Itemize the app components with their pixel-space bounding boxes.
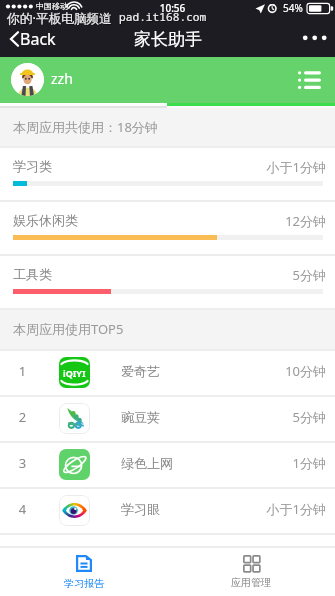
button[interactable]: 工具类 (0, 256, 335, 308)
staticText: 12分钟 (0, 212, 326, 230)
button[interactable]: 应用管理 (167, 548, 335, 596)
button[interactable]: zzh (0, 57, 335, 103)
staticText: 你的·平板电脑频道 (8, 10, 113, 27)
staticText: 你的·平板电脑频道 (7, 9, 112, 26)
staticText: 豌豆荚 (121, 409, 160, 425)
staticText: pad.it168.com (118, 8, 206, 23)
button[interactable]: Menu (287, 57, 335, 103)
staticText: 应用管理 (231, 576, 271, 589)
button[interactable]: More options (295, 20, 335, 57)
staticText: zzh (51, 69, 73, 88)
staticText: 1分钟 (0, 454, 326, 472)
staticText: 学习报告 (64, 577, 104, 590)
staticText: pad.it168.com (119, 9, 207, 24)
staticText: 你的·平板电脑频道 (6, 8, 111, 25)
staticText: 本周应用使用TOP5 (13, 320, 124, 338)
staticText: 10:56 (5, 1, 335, 15)
button[interactable]: 3 (0, 443, 335, 487)
button[interactable]: 学习报告 (0, 548, 167, 596)
staticText: 4 (0, 500, 45, 518)
staticText: 家长助手 (134, 29, 202, 50)
staticText: iQIYI (63, 367, 86, 379)
staticText: 小于1分钟 (0, 500, 326, 518)
staticText: 1 (0, 362, 45, 380)
staticText: 10分钟 (0, 362, 326, 380)
staticText: 小于1分钟 (0, 158, 326, 176)
staticText: 工具类 (13, 266, 52, 282)
staticText: 爱奇艺 (121, 363, 160, 379)
staticText: 3 (0, 454, 45, 472)
staticText: 2 (0, 408, 45, 426)
staticText: 学习类 (13, 158, 52, 174)
staticText: 5分钟 (0, 408, 326, 426)
staticText: Back (20, 28, 56, 50)
button[interactable]: Back (0, 20, 64, 57)
staticText: 5分钟 (0, 266, 326, 284)
staticText: 学习眼 (121, 501, 160, 517)
button[interactable]: 娱乐休闲类 (0, 202, 335, 254)
staticText: 绿色上网 (121, 455, 173, 471)
staticText: 54% (283, 1, 303, 15)
staticText: 本周应用共使用：18分钟 (13, 118, 158, 136)
staticText: pad.it168.com (120, 10, 208, 25)
staticText: 娱乐休闲类 (13, 212, 78, 228)
button[interactable]: 2 (0, 397, 335, 441)
button[interactable]: 学习类 (0, 148, 335, 200)
button[interactable]: 1 (0, 351, 335, 395)
staticText: 中国移动 (36, 1, 68, 11)
button[interactable]: 4 (0, 489, 335, 533)
